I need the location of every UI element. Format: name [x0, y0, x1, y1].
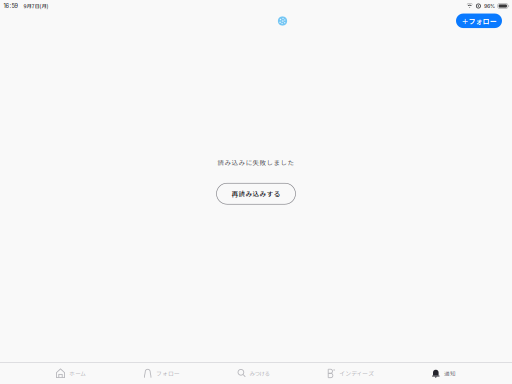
staticText: 9月7日(月) [23, 2, 48, 10]
button[interactable]: フォロー [144, 363, 180, 384]
staticText: 通知 [444, 369, 456, 377]
button[interactable]: みつける [237, 363, 270, 384]
staticText: ホーム [69, 369, 86, 377]
button[interactable]: ホーム [56, 363, 86, 384]
staticText: 96% [484, 3, 495, 9]
staticText: 16:59 [3, 3, 18, 9]
button[interactable]: 再読み込みする [216, 183, 295, 204]
button[interactable]: ＋フォロー [456, 14, 502, 28]
staticText: 読み込みに失敗しました [217, 158, 294, 167]
staticText: 再読み込みする [231, 189, 280, 199]
staticText: フォロー [156, 369, 180, 378]
button[interactable]: インディーズ [327, 363, 374, 384]
staticText: ＋フォロー [461, 16, 496, 26]
button[interactable]: 通知 [432, 363, 456, 384]
staticText: インディーズ [339, 369, 374, 378]
staticText: みつける [250, 369, 270, 377]
